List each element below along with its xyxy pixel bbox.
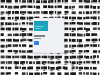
button[interactable]: Confirm [33, 18, 64, 53]
button[interactable] [34, 21, 48, 31]
button[interactable]: Confirm [34, 41, 39, 45]
